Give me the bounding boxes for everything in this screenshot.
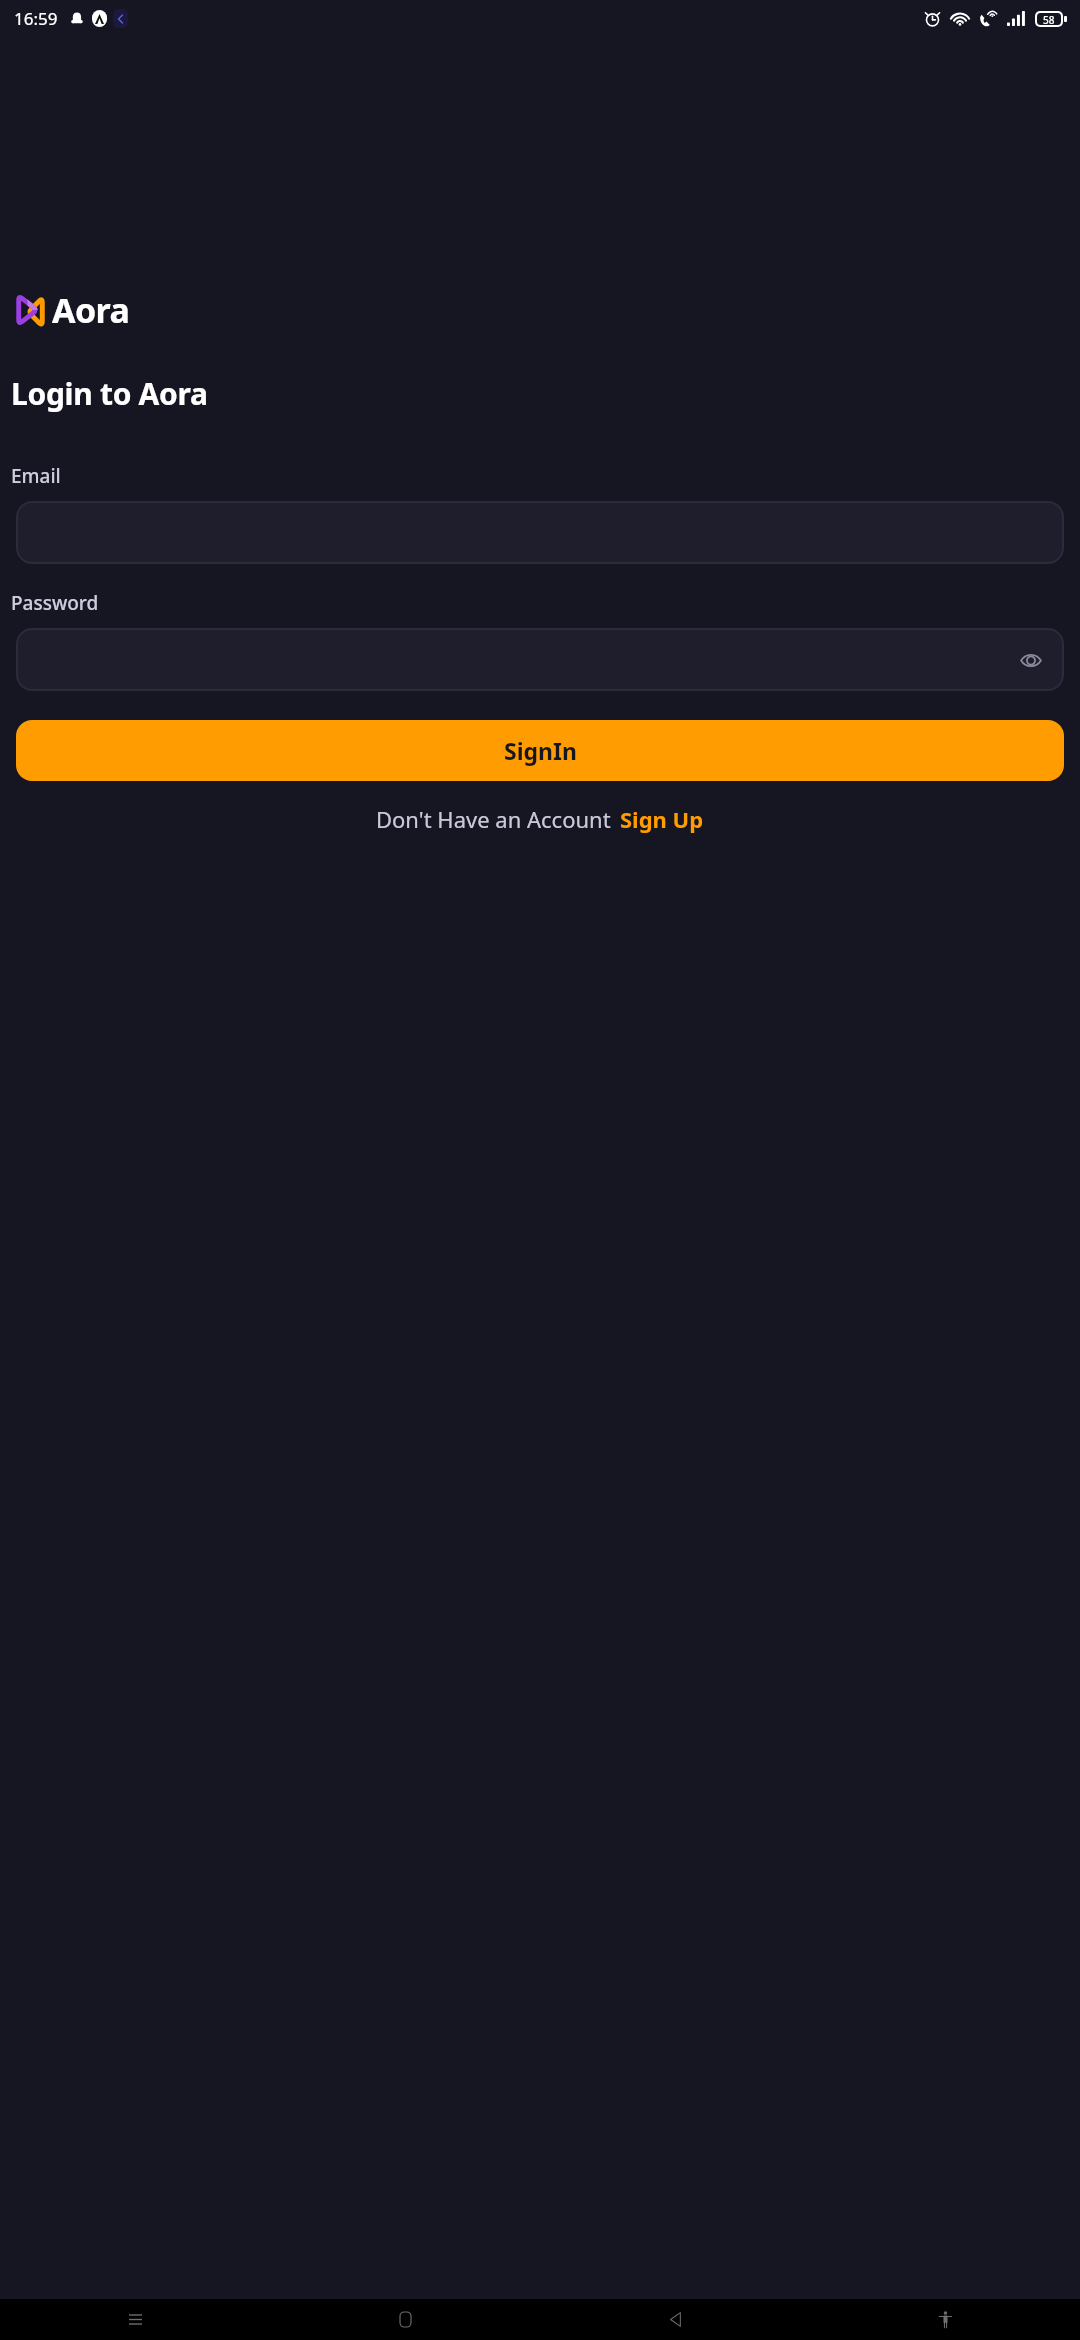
button[interactable]: Back: [540, 2299, 810, 2340]
button[interactable]: SignIn: [16, 720, 1064, 781]
staticText: Don't Have an Account: [376, 804, 611, 834]
staticText: SignIn: [504, 735, 577, 766]
button[interactable]: Home: [270, 2299, 540, 2340]
staticText: 16:59: [14, 7, 58, 30]
staticText: Aora: [52, 287, 130, 333]
staticText: Sign Up: [620, 804, 704, 834]
staticText: Email: [11, 463, 61, 489]
staticText: Password: [11, 590, 99, 616]
button[interactable]: Recent apps: [0, 2299, 270, 2340]
button[interactable]: Sign Up: [620, 804, 704, 834]
button[interactable]: [16, 501, 1064, 564]
button[interactable]: Show password: [1014, 643, 1048, 677]
staticText: Login to Aora: [11, 373, 208, 414]
button[interactable]: Show password: [16, 628, 1064, 691]
staticText: 58: [1043, 13, 1055, 25]
button[interactable]: Accessibility: [810, 2299, 1080, 2340]
